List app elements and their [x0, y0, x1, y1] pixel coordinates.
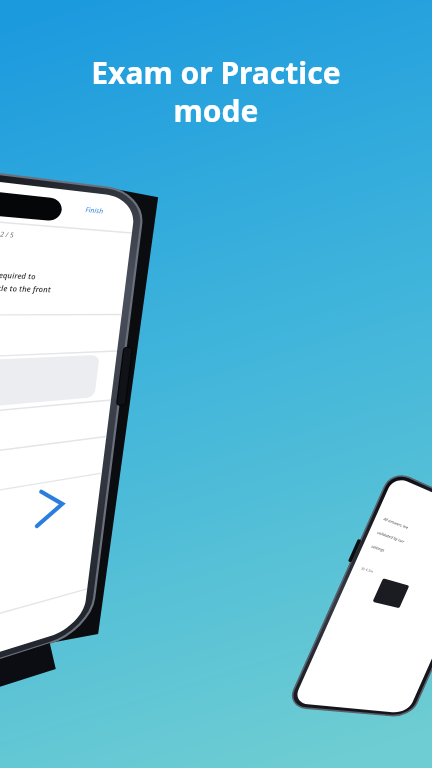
button[interactable]: Exam or Practice mode promo screen — [0, 0, 432, 768]
